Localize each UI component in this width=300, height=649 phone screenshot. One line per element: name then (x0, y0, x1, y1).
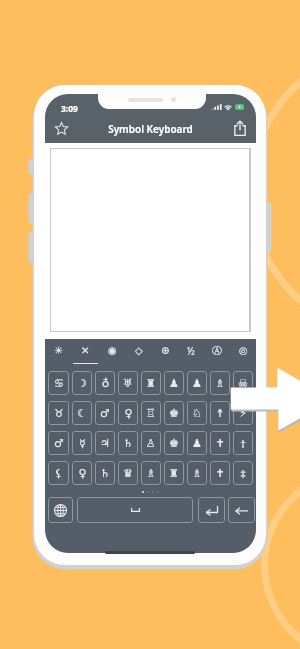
staticText: ½ (187, 344, 195, 358)
staticText: ♄ (100, 467, 110, 480)
staticText: ♜ (146, 377, 156, 390)
staticText: ♉ (54, 407, 64, 420)
staticText: ♂ (100, 407, 110, 420)
staticText: ♚ (169, 407, 179, 420)
button[interactable]: ♟ (164, 371, 184, 395)
button[interactable]: ♀ (72, 461, 92, 485)
staticText: ◉ (108, 345, 117, 357)
button[interactable]: ♛ (118, 461, 138, 485)
staticText: ⊕ (161, 345, 170, 357)
button[interactable]: ♟ (187, 371, 207, 395)
staticText: ♗ (215, 377, 225, 390)
button[interactable]: ✝ (210, 431, 230, 455)
button[interactable]: ♄ (95, 461, 115, 485)
button[interactable]: † (233, 431, 253, 455)
button[interactable]: ♚ (164, 401, 184, 425)
button[interactable]: ♜ (141, 371, 161, 395)
button[interactable]: ♗ (141, 461, 161, 485)
staticText: ⚸ (54, 467, 63, 480)
staticText: ☨ (217, 407, 223, 420)
staticText: † (240, 436, 246, 451)
staticText: ♘ (192, 407, 202, 420)
staticText: ♛ (123, 467, 133, 480)
button[interactable]: ♜ (164, 461, 184, 485)
button[interactable]: ♚ (164, 431, 184, 455)
staticText: ♀ (78, 467, 87, 480)
button[interactable]: Category 3 (99, 339, 126, 364)
staticText: ◇ (135, 345, 143, 357)
staticText: ♁ (101, 377, 110, 390)
staticText: Ⓐ (212, 344, 222, 357)
staticText: Symbol Keyboard (77, 122, 224, 136)
staticText: ♄ (123, 437, 133, 450)
staticText: ♂ (54, 437, 64, 450)
staticText: ☿ (79, 437, 86, 450)
staticText: 3:09 (61, 103, 78, 115)
button[interactable]: ♙ (141, 431, 161, 455)
staticText: ♟ (169, 377, 179, 390)
button[interactable]: ♟ (187, 431, 207, 455)
button[interactable]: Category 2 (72, 339, 99, 364)
button[interactable]: Category 6 (178, 339, 204, 364)
staticText: ✝ (215, 467, 225, 480)
staticText: ✕ (81, 345, 90, 357)
staticText: ♗ (146, 467, 156, 480)
staticText: ☾ (77, 407, 87, 420)
button[interactable]: Switch language (48, 497, 73, 523)
staticText: ♅ (123, 377, 133, 390)
button[interactable]: ♋ (48, 371, 69, 395)
staticText: ♟ (192, 437, 202, 450)
button[interactable]: Return (198, 497, 225, 523)
button[interactable]: ♅ (118, 371, 138, 395)
staticText: ☠ (238, 377, 248, 390)
staticText: ♚ (169, 437, 179, 450)
button[interactable]: Category 4 (126, 339, 152, 364)
button[interactable]: ☿ (72, 431, 92, 455)
button[interactable]: ☽ (72, 371, 92, 395)
button[interactable]: Backspace (228, 497, 255, 523)
button[interactable]: ☨ (210, 401, 230, 425)
button[interactable]: ☾ (72, 401, 92, 425)
button[interactable]: ♉ (48, 401, 69, 425)
staticText: ♃ (100, 437, 110, 450)
button[interactable]: ♂ (48, 431, 69, 455)
button[interactable]: ♀ (118, 401, 138, 425)
button[interactable]: Category 5 (152, 339, 178, 364)
button[interactable]: ♃ (95, 431, 115, 455)
staticText: ♖ (146, 407, 156, 420)
button[interactable]: Category 8 (230, 339, 256, 364)
staticText: ☽ (77, 377, 87, 390)
button[interactable]: Category 7 (204, 339, 230, 364)
staticText: ♋ (54, 377, 64, 390)
staticText: ⚡ (239, 407, 247, 420)
button[interactable]: ⚸ (48, 461, 69, 485)
button[interactable]: ☠ (233, 371, 253, 395)
staticText: ♀ (124, 407, 133, 420)
staticText: ◎ (239, 345, 248, 357)
staticText: ☀ (54, 345, 63, 357)
button[interactable]: ♄ (118, 431, 138, 455)
staticText: ♙ (146, 437, 156, 450)
button[interactable]: ♗ (210, 371, 230, 395)
staticText: ♜ (169, 467, 179, 480)
button[interactable]: Category 1 (45, 339, 72, 364)
button[interactable]: Share (224, 113, 256, 143)
button[interactable]: ♖ (141, 401, 161, 425)
button[interactable]: Space (77, 497, 193, 523)
button[interactable]: Favorite (45, 113, 77, 143)
button[interactable]: ♗ (187, 461, 207, 485)
button[interactable]: ♂ (95, 401, 115, 425)
button[interactable]: ⚡ (233, 401, 253, 425)
staticText: ♗ (192, 467, 202, 480)
button[interactable]: ✝ (210, 461, 230, 485)
staticText: ✝ (215, 437, 225, 450)
button[interactable]: ♁ (95, 371, 115, 395)
button[interactable]: ‡ (233, 461, 253, 485)
button[interactable]: ♘ (187, 401, 207, 425)
staticText: ‡ (240, 466, 246, 481)
staticText: ♟ (192, 377, 202, 390)
